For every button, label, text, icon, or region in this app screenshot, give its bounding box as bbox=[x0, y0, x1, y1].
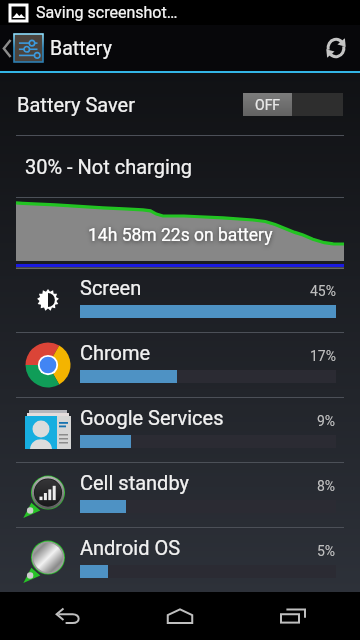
button[interactable]: Home bbox=[135, 592, 225, 640]
staticText: Android OS bbox=[80, 536, 181, 559]
button[interactable]: Navigate up bbox=[0, 25, 112, 71]
staticText: Saving screenshot… bbox=[36, 3, 178, 22]
staticText: 9% bbox=[317, 413, 336, 429]
staticText: OFF bbox=[255, 97, 281, 113]
staticText: 8% bbox=[317, 478, 336, 494]
button[interactable]: Screen bbox=[0, 268, 360, 332]
button[interactable]: Refresh bbox=[312, 25, 360, 71]
staticText: 14h 58m 22s on battery bbox=[88, 225, 273, 246]
button[interactable]: Android OS bbox=[0, 528, 360, 592]
button[interactable]: Back bbox=[23, 592, 113, 640]
staticText: 5% bbox=[317, 543, 336, 559]
button[interactable]: Cell standby bbox=[0, 463, 360, 527]
staticText: Google Services bbox=[80, 406, 224, 429]
button[interactable]: Recent apps bbox=[248, 592, 338, 640]
staticText: Screen bbox=[80, 276, 142, 299]
button[interactable]: Chrome bbox=[0, 333, 360, 397]
staticText: 17% bbox=[310, 348, 336, 364]
staticText: Battery bbox=[50, 37, 112, 60]
staticText: Chrome bbox=[80, 341, 151, 364]
staticText: 30% - Not charging bbox=[25, 155, 193, 178]
button[interactable]: Battery Saver off bbox=[243, 93, 343, 116]
button[interactable]: Google Services bbox=[0, 398, 360, 462]
staticText: Cell standby bbox=[80, 471, 189, 494]
button[interactable]: Battery Saver bbox=[0, 73, 360, 135]
staticText: Battery Saver bbox=[17, 93, 135, 116]
staticText: 45% bbox=[310, 283, 336, 299]
